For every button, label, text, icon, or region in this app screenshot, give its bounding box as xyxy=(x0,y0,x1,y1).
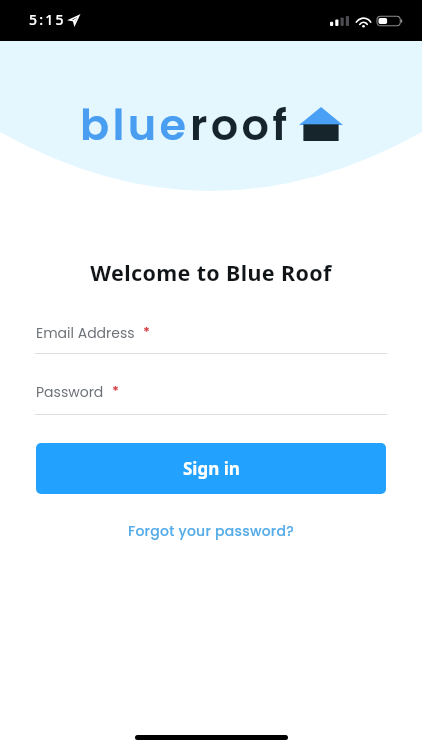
staticText: * xyxy=(112,381,119,399)
staticText: Password xyxy=(36,382,104,402)
staticText: blue xyxy=(80,95,190,155)
staticText: Sign in xyxy=(183,457,240,480)
staticText: Email Address xyxy=(36,323,135,343)
other: Location active xyxy=(69,15,79,25)
staticText: Forgot your password? xyxy=(0,521,422,541)
button[interactable]: Forgot your password? xyxy=(0,518,422,544)
staticText: Welcome to Blue Roof xyxy=(0,258,422,287)
staticText: roof xyxy=(190,95,291,155)
staticText: 5:15 xyxy=(29,10,66,29)
button[interactable]: Sign in xyxy=(36,443,386,494)
staticText: * xyxy=(143,322,150,340)
other: Cellular signal xyxy=(330,16,349,26)
